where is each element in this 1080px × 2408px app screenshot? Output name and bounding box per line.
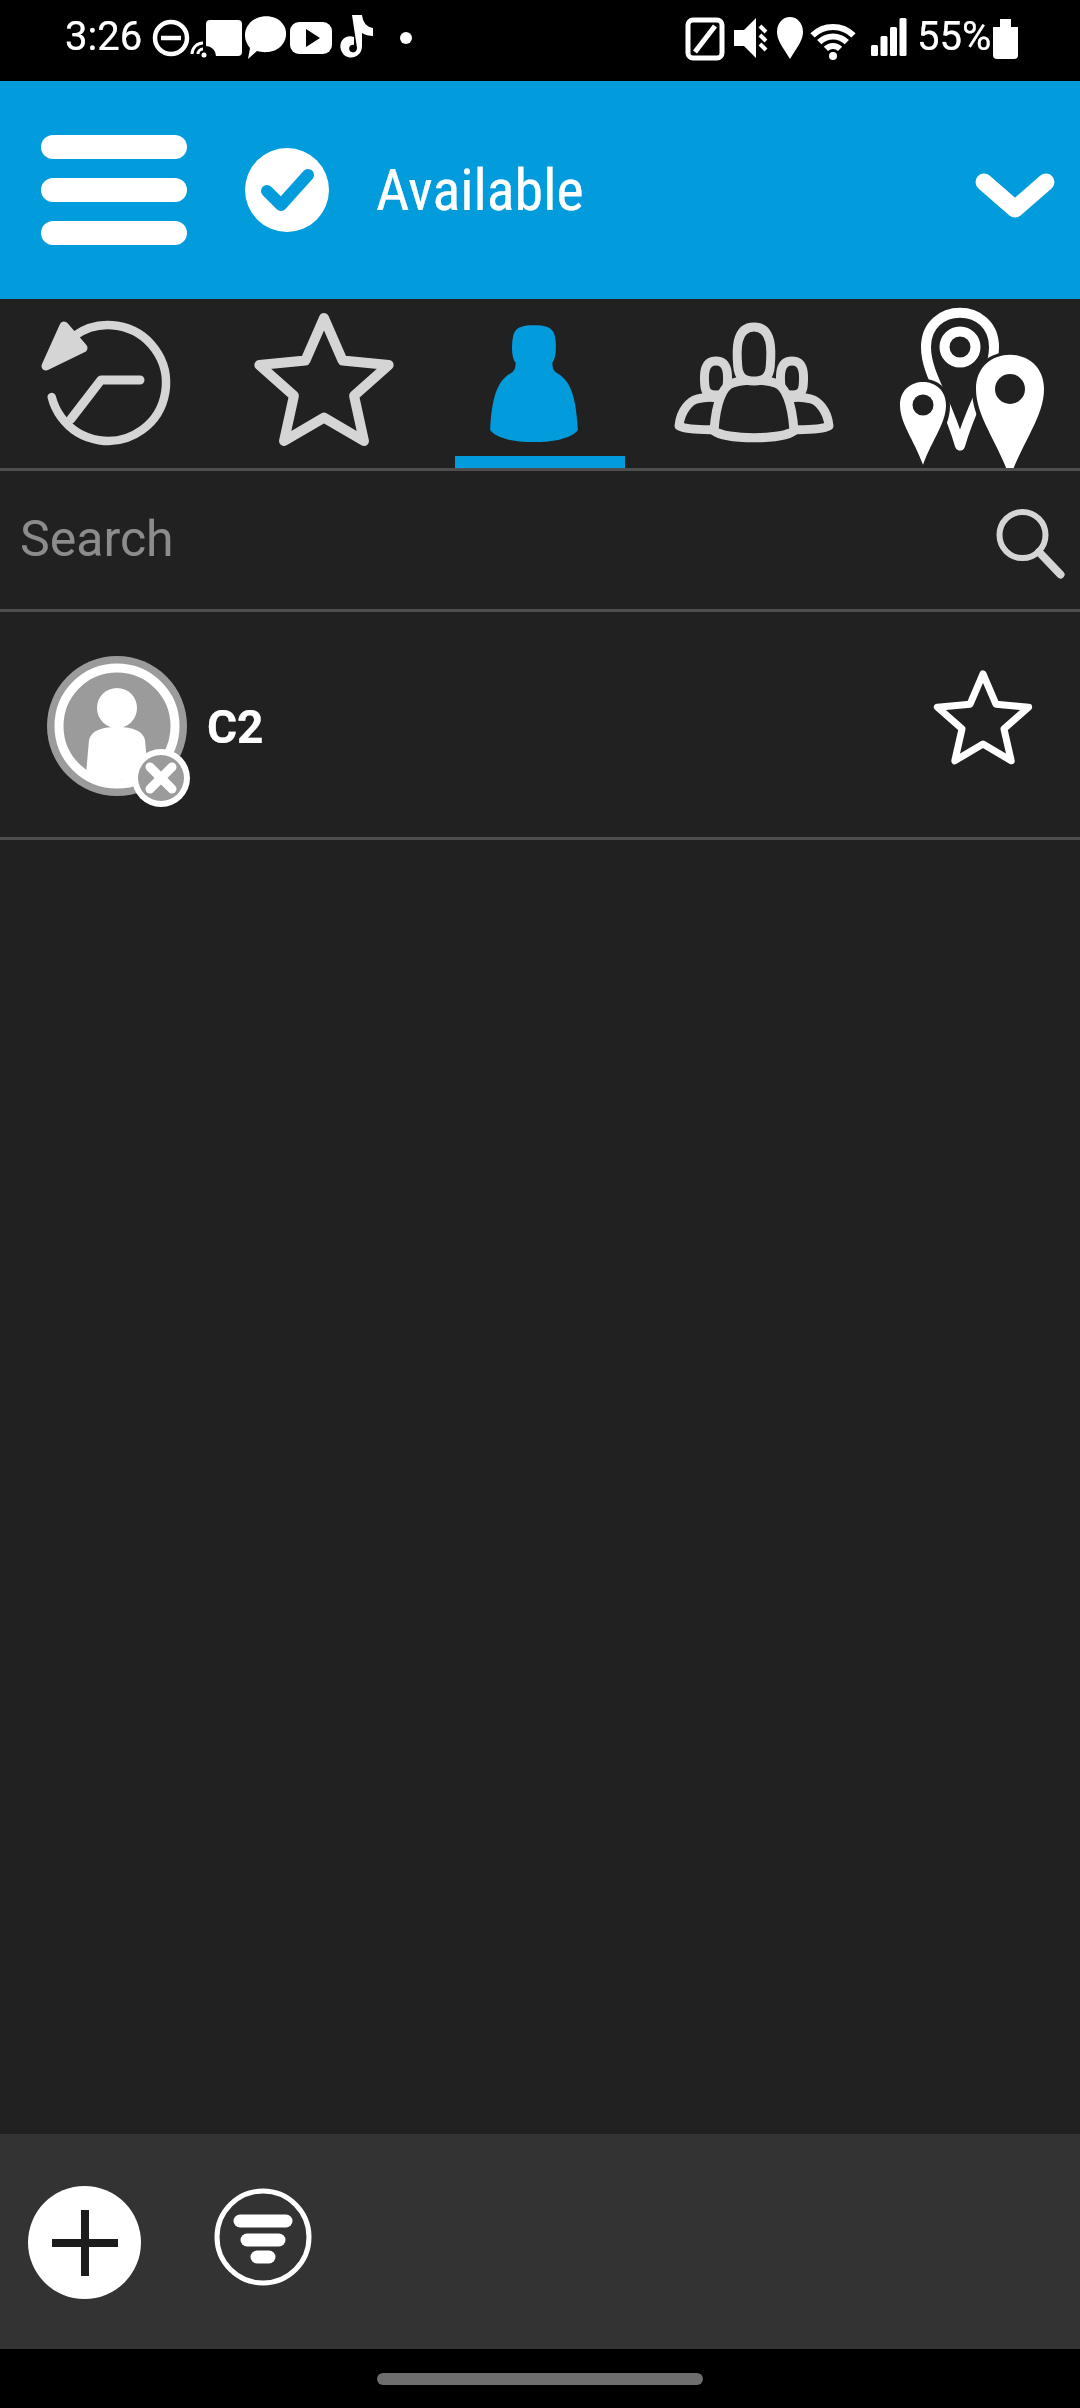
button[interactable]: C2 xyxy=(0,612,1080,840)
staticText: C2 xyxy=(207,700,264,754)
button[interactable]: Favorites xyxy=(216,299,432,471)
staticText: 55% xyxy=(917,13,992,60)
button[interactable]: Filter xyxy=(214,2188,312,2286)
button[interactable]: History xyxy=(0,299,216,471)
button[interactable]: Open navigation menu xyxy=(20,134,208,246)
button[interactable]: Search xyxy=(0,471,1080,612)
staticText: 3:26 xyxy=(65,13,143,60)
button[interactable]: Map xyxy=(864,299,1080,471)
button[interactable]: Available xyxy=(245,81,1080,299)
button[interactable]: Contacts xyxy=(432,299,648,471)
button[interactable]: Groups xyxy=(648,299,864,471)
other: Search xyxy=(980,497,1070,587)
staticText: Search xyxy=(20,510,174,569)
button[interactable]: Add contact xyxy=(28,2186,141,2299)
staticText: Available xyxy=(376,156,584,224)
other: Expand status xyxy=(960,135,1070,245)
